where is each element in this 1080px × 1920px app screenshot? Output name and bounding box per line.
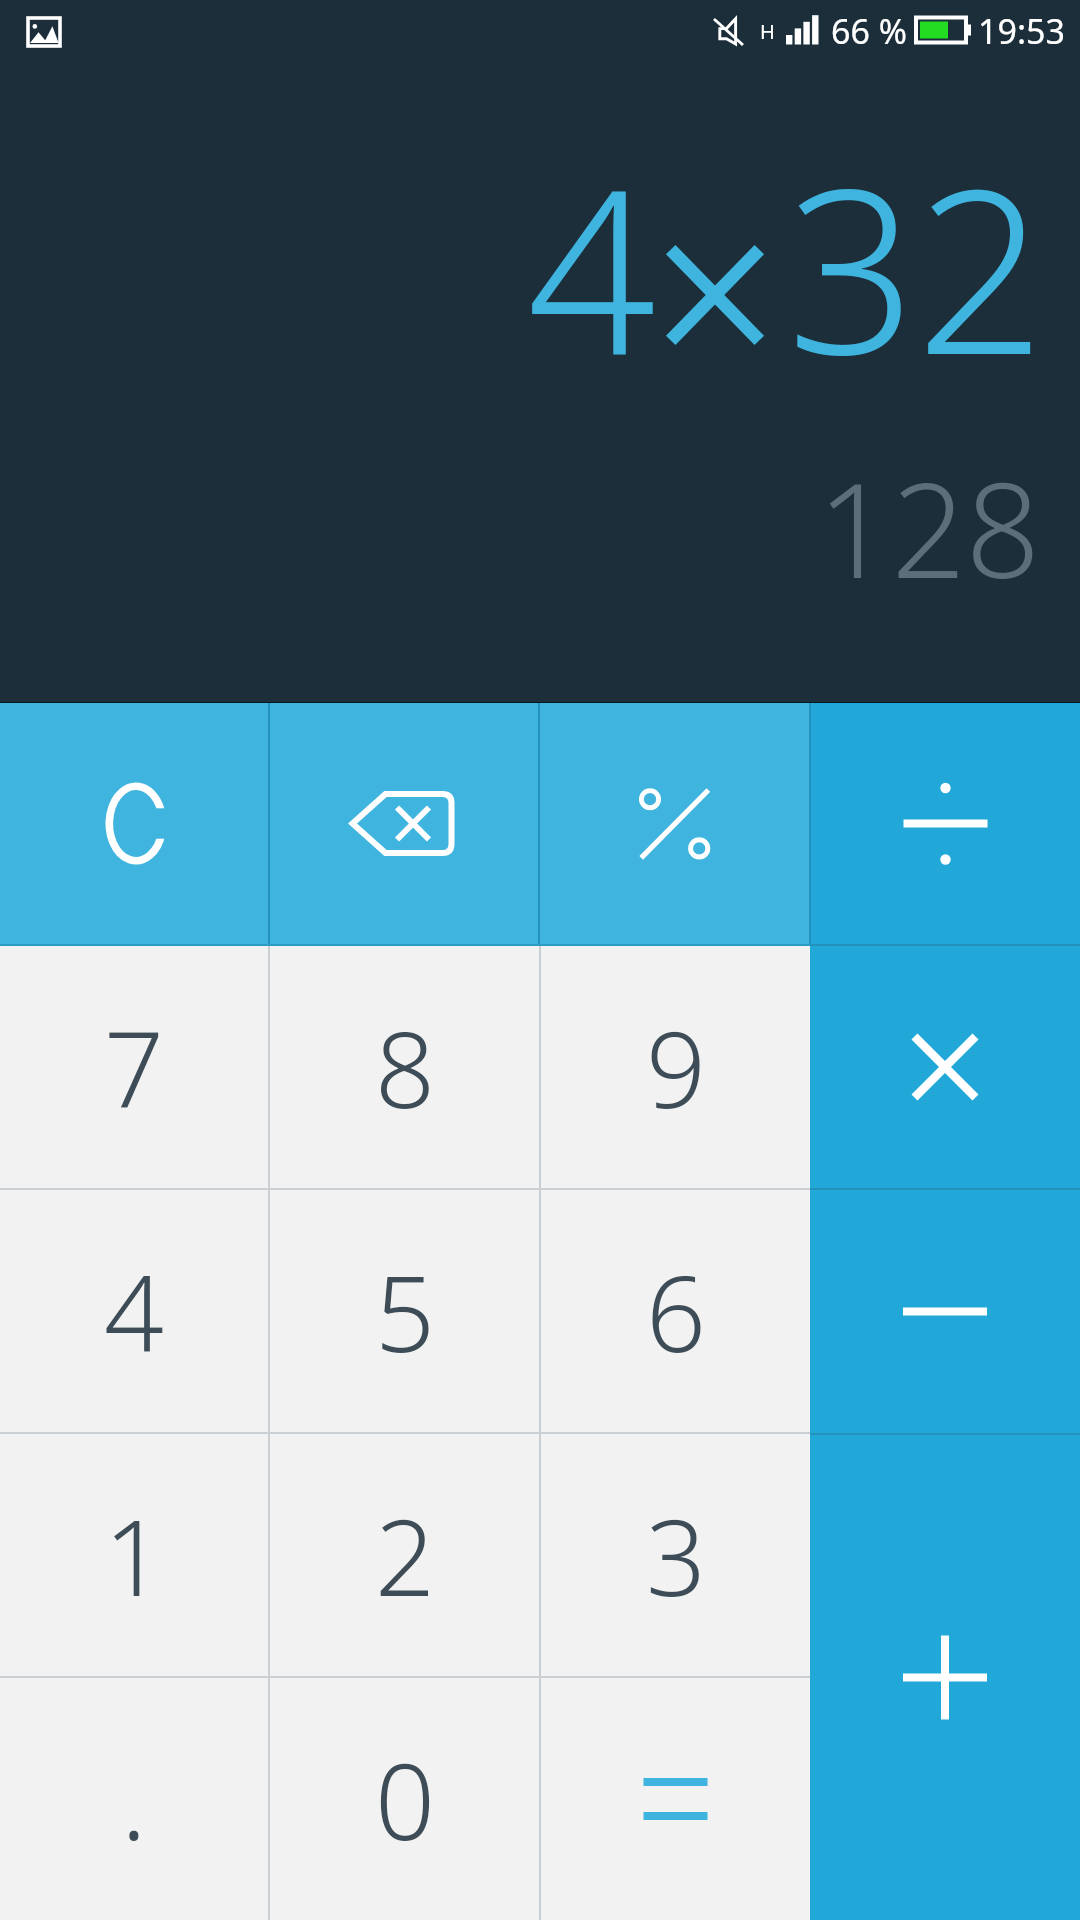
staticText: 1	[104, 1484, 164, 1627]
button[interactable]: 2	[270, 1434, 539, 1676]
staticText: 4	[104, 1240, 164, 1383]
button[interactable]: 3	[541, 1434, 810, 1676]
button[interactable]: 0	[270, 1678, 539, 1920]
button[interactable]: 6	[541, 1190, 810, 1432]
button[interactable]: 5	[270, 1190, 539, 1432]
button[interactable]: 4	[0, 1190, 268, 1432]
button[interactable]: Plus	[810, 1435, 1080, 1920]
button[interactable]: Minus	[810, 1190, 1080, 1433]
button[interactable]: Percent	[540, 703, 809, 944]
button[interactable]: .	[0, 1678, 268, 1920]
button[interactable]: 9	[541, 946, 810, 1188]
button[interactable]: 7	[0, 946, 268, 1188]
staticText: 2	[375, 1484, 435, 1627]
button[interactable]: Divide	[811, 703, 1080, 944]
staticText: 3	[646, 1484, 706, 1627]
staticText: 6	[646, 1240, 706, 1383]
staticText: 5	[375, 1240, 435, 1383]
button[interactable]: 8	[270, 946, 539, 1188]
staticText: 8	[375, 996, 435, 1139]
staticText: 66 %	[831, 8, 907, 54]
button[interactable]: Clear	[0, 703, 268, 944]
staticText: H	[760, 18, 775, 45]
staticText: 7	[104, 996, 164, 1139]
staticText: 19:53	[978, 8, 1065, 54]
staticText: 32	[786, 112, 1045, 420]
button[interactable]: Backspace	[270, 703, 538, 944]
staticText: 128	[817, 439, 1040, 616]
staticText: 9	[646, 996, 706, 1139]
button[interactable]: 1	[0, 1434, 268, 1676]
staticText: 0	[375, 1728, 435, 1871]
button[interactable]: Multiply	[810, 946, 1080, 1188]
staticText: 4	[527, 112, 657, 420]
staticText: .	[121, 1728, 147, 1871]
button[interactable]: Equals	[541, 1678, 810, 1920]
